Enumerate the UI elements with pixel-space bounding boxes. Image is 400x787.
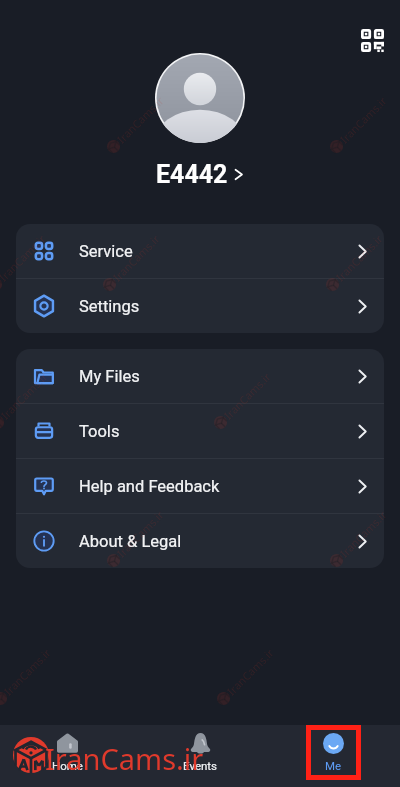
staticText: IranCams.ir	[0, 369, 51, 422]
staticText: Tools	[79, 422, 120, 441]
staticText: About & Legal	[79, 532, 182, 551]
staticText: IranCams.ir	[114, 507, 167, 560]
staticText: IranCams.ir	[0, 231, 49, 284]
button[interactable]: Scan QR code	[351, 19, 394, 62]
staticText: IranCams.ir	[114, 93, 167, 146]
button[interactable]: Service	[16, 224, 384, 278]
staticText: IranCams.ir	[224, 645, 277, 698]
staticText: Home	[52, 759, 83, 772]
button[interactable]: My Files	[16, 349, 384, 403]
button[interactable]: E4442	[0, 159, 400, 189]
staticText: IranCams.ir	[337, 507, 390, 560]
staticText: IranCams.ir	[221, 369, 274, 422]
staticText: IranCams.ir	[1, 645, 54, 698]
staticText: IranCams.ir	[110, 231, 163, 284]
staticText: Settings	[79, 297, 140, 316]
staticText: Me	[325, 759, 342, 772]
button[interactable]: Home	[0, 725, 134, 787]
button[interactable]: Profile picture	[155, 53, 245, 143]
staticText: IranCams.ir	[337, 93, 390, 146]
staticText: My Files	[79, 367, 140, 386]
button[interactable]: Tools	[16, 404, 384, 458]
staticText: E4442	[156, 160, 228, 189]
button[interactable]: Help and Feedback	[16, 459, 384, 513]
staticText: Service	[79, 242, 133, 261]
button[interactable]: Events	[134, 725, 267, 787]
staticText: IranCams.ir	[333, 231, 386, 284]
staticText: IranCams.ir	[45, 739, 204, 778]
button[interactable]: About & Legal	[16, 514, 384, 568]
staticText: Help and Feedback	[79, 477, 220, 496]
button[interactable]: Settings	[16, 279, 384, 333]
staticText: Events	[183, 759, 218, 772]
button[interactable]: Me	[267, 725, 400, 787]
